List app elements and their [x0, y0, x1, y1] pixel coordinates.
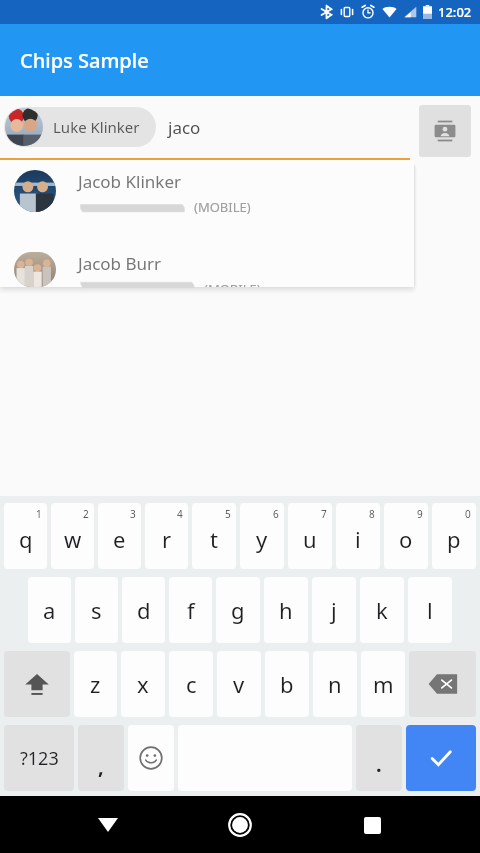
staticText: 2	[83, 507, 89, 521]
button[interactable]: z	[74, 651, 117, 717]
staticText: Chips Sample	[20, 47, 149, 74]
button[interactable]: m	[361, 651, 405, 717]
staticText: b	[280, 669, 294, 699]
button[interactable]: w	[51, 503, 94, 569]
staticText: j	[331, 595, 337, 625]
button[interactable]: t	[192, 503, 236, 569]
staticText: ?123	[20, 746, 59, 771]
button[interactable]: y	[240, 503, 284, 569]
staticText: 4	[177, 507, 183, 521]
button[interactable]: n	[313, 651, 357, 717]
staticText: c	[186, 669, 197, 699]
staticText: 1	[36, 507, 42, 521]
staticText: p	[447, 524, 461, 554]
staticText: l	[427, 595, 433, 625]
staticText: f	[187, 595, 195, 625]
button[interactable]: Emoji	[128, 725, 174, 791]
button[interactable]: Done	[406, 725, 476, 791]
staticText: a	[43, 595, 56, 625]
button[interactable]: s	[75, 577, 118, 643]
staticText: u	[303, 524, 317, 554]
staticText: ,	[98, 753, 104, 780]
button[interactable]: i	[336, 503, 380, 569]
button[interactable]: a	[28, 577, 71, 643]
button[interactable]: l	[408, 577, 452, 643]
button[interactable]: b	[265, 651, 309, 717]
button[interactable]: Home	[216, 801, 264, 849]
staticText: m	[373, 669, 394, 699]
button[interactable]: Jacob Burr	[0, 250, 414, 287]
staticText: t	[210, 524, 218, 554]
button[interactable]: j	[312, 577, 356, 643]
button[interactable]: .	[356, 725, 402, 791]
staticText: 6	[273, 507, 279, 521]
staticText: Jacob Burr	[78, 252, 162, 275]
staticText: 7	[321, 507, 327, 521]
button[interactable]: g	[216, 577, 260, 643]
staticText: y	[256, 524, 268, 554]
button[interactable]: Backspace	[409, 651, 476, 717]
button[interactable]: r	[145, 503, 188, 569]
staticText: k	[376, 595, 388, 625]
staticText: s	[91, 595, 102, 625]
staticText: jaco	[168, 116, 201, 139]
staticText: r	[162, 524, 172, 554]
button[interactable]: o	[384, 503, 428, 569]
staticText: w	[64, 524, 82, 554]
staticText: d	[137, 595, 151, 625]
button[interactable]: h	[264, 577, 308, 643]
button[interactable]: d	[122, 577, 165, 643]
staticText: 0	[465, 507, 471, 521]
button[interactable]: q	[4, 503, 47, 569]
staticText: .	[376, 751, 382, 778]
staticText: 8	[369, 507, 375, 521]
staticText: 3	[130, 507, 136, 521]
button[interactable]: k	[360, 577, 404, 643]
staticText: q	[19, 524, 33, 554]
button[interactable]: u	[288, 503, 332, 569]
button[interactable]: v	[217, 651, 261, 717]
staticText: n	[328, 669, 342, 699]
staticText: (MOBILE)	[204, 280, 261, 287]
button[interactable]: Luke Klinker	[4, 107, 156, 147]
staticText: (MOBILE)	[194, 198, 251, 216]
staticText: Luke Klinker	[53, 117, 140, 137]
staticText: 5	[225, 507, 231, 521]
staticText: x	[137, 669, 149, 699]
button[interactable]: f	[169, 577, 212, 643]
button[interactable]: Pick contact	[419, 105, 471, 157]
staticText: 12:02	[438, 3, 472, 21]
staticText: 9	[417, 507, 423, 521]
button[interactable]: e	[98, 503, 141, 569]
staticText: Jacob Klinker	[78, 170, 181, 193]
button[interactable]: x	[121, 651, 165, 717]
button[interactable]: p	[432, 503, 476, 569]
button[interactable]: Jacob Klinker	[0, 168, 414, 226]
button[interactable]: Recents	[348, 801, 396, 849]
button[interactable]: ?123	[4, 725, 74, 791]
staticText: e	[113, 524, 126, 554]
staticText: o	[399, 524, 413, 554]
button[interactable]: ,	[78, 725, 124, 791]
staticText: z	[90, 669, 101, 699]
button[interactable]: Shift	[4, 651, 70, 717]
staticText: g	[231, 595, 245, 625]
staticText: v	[233, 669, 245, 699]
button[interactable]: c	[169, 651, 213, 717]
staticText: i	[355, 524, 361, 554]
button[interactable]: Back	[84, 801, 132, 849]
staticText: h	[279, 595, 293, 625]
